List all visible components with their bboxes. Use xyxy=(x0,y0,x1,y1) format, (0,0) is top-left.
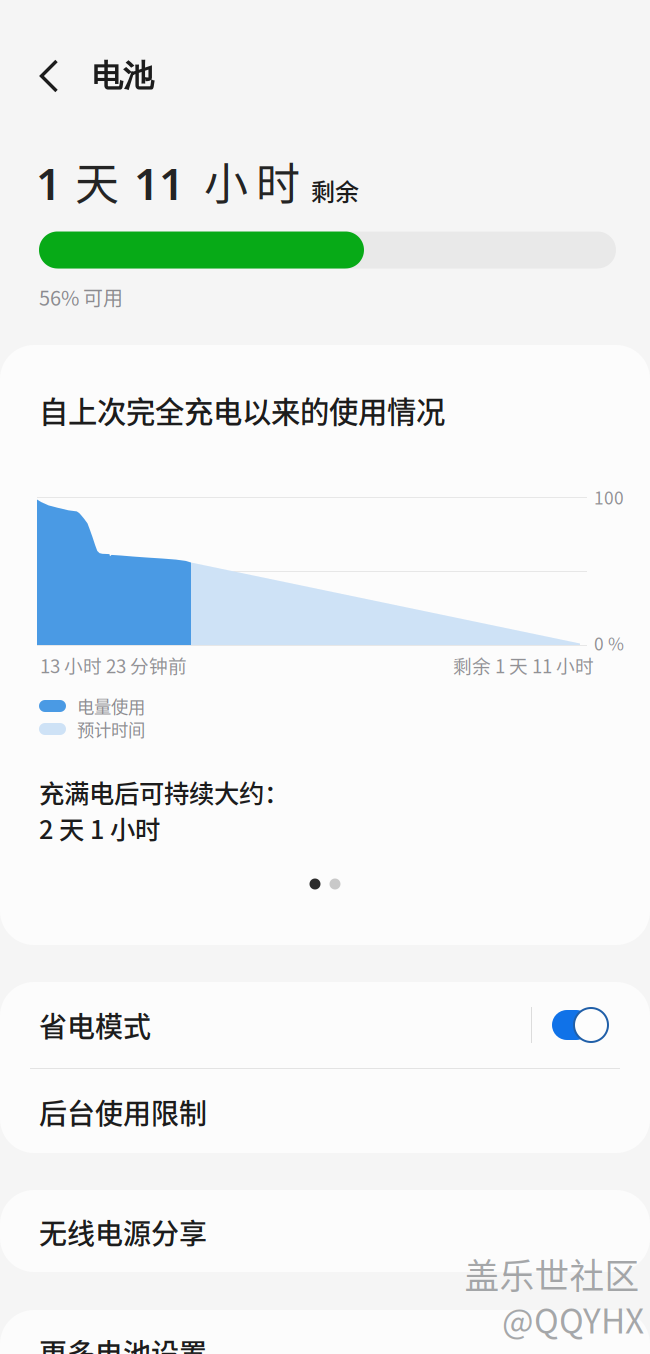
staticText: 剩余 xyxy=(311,173,359,208)
staticText: 电量使用 xyxy=(77,693,145,719)
staticText: 预计时间 xyxy=(77,716,145,742)
staticText: 天 xyxy=(75,149,119,213)
staticText: 2 天 1 小时 xyxy=(39,810,160,846)
staticText: 后台使用限制 xyxy=(39,1092,207,1132)
staticText: 11 xyxy=(134,153,184,213)
staticText: 1 xyxy=(36,153,61,213)
staticText: 自上次完全充电以来的使用情况 xyxy=(39,389,445,431)
staticText: 无线电源分享 xyxy=(39,1212,207,1252)
button[interactable]: 更多电池设置 xyxy=(0,1309,650,1354)
staticText: 剩余 1 天 11 小时 xyxy=(453,651,594,678)
button[interactable]: 省电模式 xyxy=(0,982,650,1068)
staticText: 时 xyxy=(256,149,300,213)
staticText: 盖乐世社区 xyxy=(464,1249,639,1299)
staticText: @QQYHX xyxy=(502,1295,644,1343)
staticText: 省电模式 xyxy=(39,1005,151,1045)
button[interactable]: 电池 xyxy=(0,24,650,128)
staticText: 充满电后可持续大约： xyxy=(39,774,289,810)
staticText: 56% 可用 xyxy=(39,282,123,311)
staticText: 电池 xyxy=(92,57,154,95)
staticText: 小 xyxy=(204,149,248,213)
staticText: 13 小时 23 分钟前 xyxy=(40,651,187,678)
button[interactable]: 后台使用限制 xyxy=(0,1069,650,1155)
staticText: 100 xyxy=(594,484,624,510)
staticText: 更多电池设置 xyxy=(39,1332,207,1354)
button[interactable]: 无线电源分享 xyxy=(0,1189,650,1275)
staticText: 0 % xyxy=(594,630,624,656)
